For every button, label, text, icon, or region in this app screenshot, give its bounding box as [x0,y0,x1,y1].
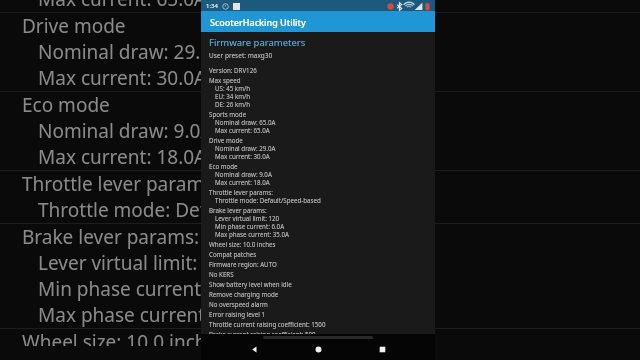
staticText: Drive mode [22,13,126,39]
staticText: Compat patches [209,250,257,258]
staticText: Version: DRV126 [209,66,257,74]
staticText: Max current: 30.0A [38,65,207,91]
staticText: Throttle mode: Default/Speed-based [215,196,321,204]
staticText: Max current: 18.0A [38,144,207,170]
staticText: 1:34 [206,2,218,10]
staticText: Nominal draw: 29.0A [38,39,224,65]
staticText: Firmware parameters [209,36,306,49]
staticText: Throttle current raising coefficient: 15… [209,320,326,328]
staticText: User preset: maxg30 [209,51,273,60]
staticText: Throttle mode: Default/Speed-based [38,197,363,223]
staticText: Wheel size: 10.0 inches [209,240,276,248]
staticText: Lever virtual limit: 120 [215,214,280,222]
staticText: No overspeed alarm [209,300,268,308]
button[interactable]: Back [243,338,265,360]
staticText: EU: 34 km/h [215,92,251,100]
staticText: US: 45 km/h [215,84,251,92]
button[interactable]: Recent apps [371,338,393,360]
staticText: Show battery level when idle [209,280,292,288]
staticText: Firmware region: AUTO [209,260,277,268]
staticText: Max current: 18.0A [215,178,270,186]
staticText: Wheel size: 10.0 inches [22,329,227,346]
staticText: DE: 26 km/h [215,100,251,108]
staticText: Nominal draw: 65.0A [215,118,276,126]
staticText: Eco mode [22,92,110,118]
staticText: Max phase current: 35.0A [38,302,266,328]
staticText: Throttle lever params: [209,188,273,196]
staticText: Drive mode [209,136,243,144]
staticText: Max phase current: 35.0A [215,230,289,238]
staticText: Eco mode [209,162,238,170]
staticText: Min phase current: 6.0A [38,276,251,302]
staticText: Nominal draw: 29.0A [215,144,276,152]
staticText: Brake current raising coefficient: 500 [209,330,316,334]
staticText: No KERS [209,270,234,278]
staticText: Max current: 65.0A [215,126,270,134]
staticText: Min phase current: 6.0A [215,222,285,230]
staticText: Throttle lever params: [22,171,219,197]
staticText: Brake lever params: [209,206,267,214]
staticText: Max speed [209,76,241,84]
staticText: Nominal draw: 9.0A [38,118,213,144]
staticText: Max current: 65.0A [38,0,207,12]
staticText: Lever virtual limit: 120 [38,250,235,276]
staticText: Brake lever params: [22,224,200,250]
button[interactable]: ScooterHacking Utility [201,11,435,32]
staticText: Max current: 30.0A [215,152,270,160]
staticText: Remove charging mode [209,290,279,298]
button[interactable]: Home [307,338,329,360]
staticText: ScooterHacking Utility [210,16,306,28]
staticText: Nominal draw: 9.0A [215,170,272,178]
staticText: Error raising level 1 [209,310,265,318]
staticText: Sports mode [209,110,247,118]
